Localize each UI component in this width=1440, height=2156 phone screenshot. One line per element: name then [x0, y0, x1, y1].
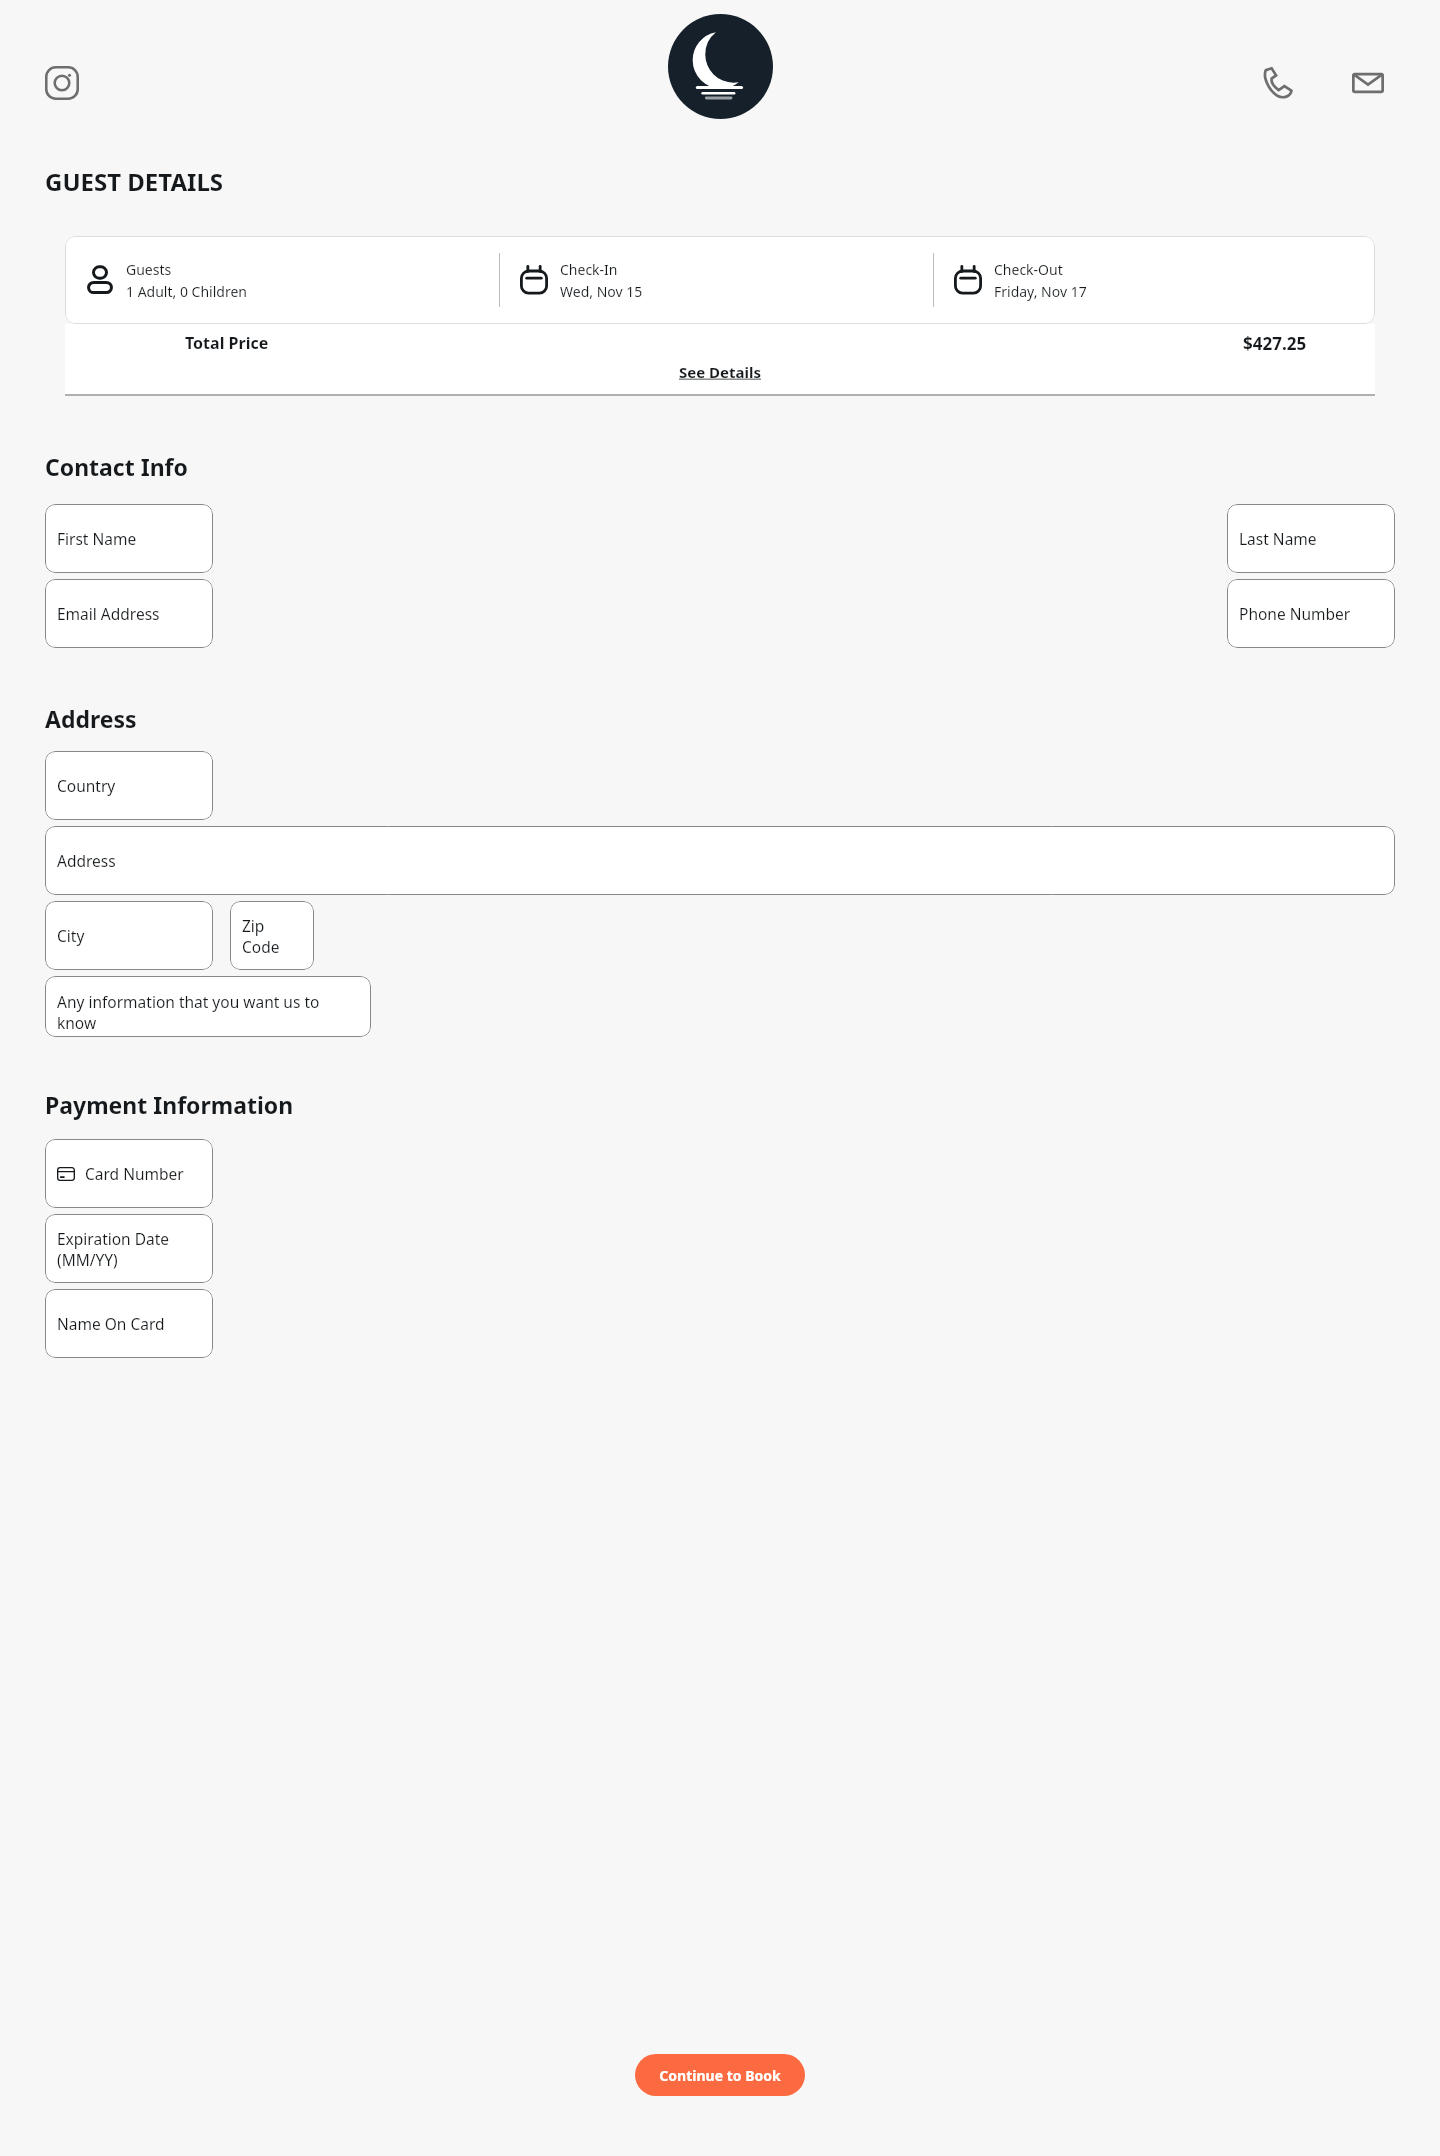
button[interactable]: Any information that you want us to know	[45, 976, 371, 1037]
staticText: Address	[57, 850, 116, 871]
button[interactable]: Phone Number	[1227, 579, 1395, 648]
staticText: Zip Code	[242, 915, 302, 957]
button[interactable]: Last Name	[1227, 504, 1395, 573]
button[interactable]: Country	[45, 751, 213, 820]
staticText: Payment Information	[45, 1089, 294, 1120]
staticText: Check-In	[560, 260, 618, 279]
staticText: Continue to Book	[659, 2066, 781, 2085]
staticText: 1 Adult, 0 Children	[126, 282, 247, 301]
button[interactable]: Zip Code	[230, 901, 314, 970]
button[interactable]: Guests	[65, 236, 499, 324]
staticText: Wed, Nov 15	[560, 282, 643, 301]
staticText: Phone Number	[1239, 603, 1351, 624]
button[interactable]: Expiration Date (MM/YY)	[45, 1214, 213, 1283]
button[interactable]: Email	[1348, 63, 1388, 103]
button[interactable]: Email Address	[45, 579, 213, 648]
staticText: Name On Card	[57, 1313, 165, 1334]
staticText: GUEST DETAILS	[45, 165, 224, 198]
button[interactable]: Call	[1258, 63, 1298, 103]
staticText: Country	[57, 775, 116, 796]
button[interactable]: First Name	[45, 504, 213, 573]
button[interactable]: Card Number	[45, 1139, 213, 1208]
button[interactable]: See Details	[679, 362, 761, 382]
staticText: Total Price	[185, 332, 269, 354]
staticText: Last Name	[1239, 528, 1317, 549]
button[interactable]: Logo	[668, 14, 773, 119]
staticText: Email Address	[57, 603, 160, 624]
button[interactable]: Name On Card	[45, 1289, 213, 1358]
button[interactable]: Instagram	[45, 66, 79, 100]
staticText: Any information that you want us to know	[57, 991, 359, 1033]
staticText: $427.25	[1243, 332, 1307, 355]
staticText: Check-Out	[994, 260, 1063, 279]
staticText: See Details	[679, 362, 761, 382]
staticText: City	[57, 925, 85, 946]
staticText: Expiration Date (MM/YY)	[57, 1228, 201, 1270]
button[interactable]: Check-Out	[934, 236, 1367, 324]
staticText: Guests	[126, 260, 172, 279]
staticText: Contact Info	[45, 451, 188, 482]
staticText: Card Number	[85, 1163, 184, 1184]
button[interactable]: Continue to Book	[635, 2054, 805, 2096]
staticText: First Name	[57, 528, 137, 549]
button[interactable]: City	[45, 901, 213, 970]
button[interactable]: Check-In	[500, 236, 933, 324]
staticText: Address	[45, 703, 137, 734]
button[interactable]: Address	[45, 826, 1395, 895]
staticText: Friday, Nov 17	[994, 282, 1087, 301]
